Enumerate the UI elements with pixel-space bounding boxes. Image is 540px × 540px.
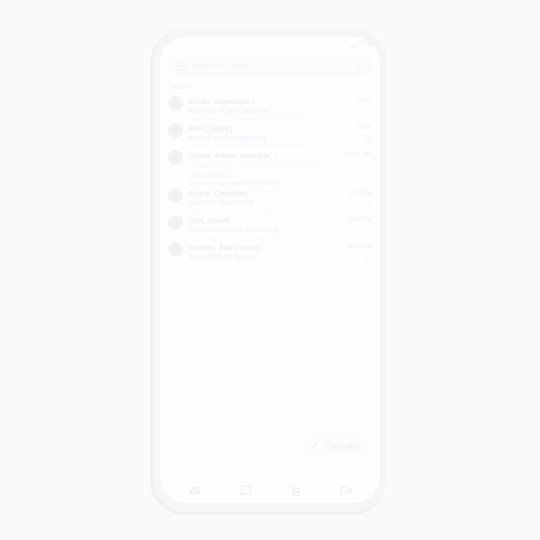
staticText: Q3 performance summary <box>189 225 278 235</box>
staticText: 9:40 AM <box>349 188 372 196</box>
button[interactable]: Open navigation menu <box>175 59 187 71</box>
staticText: Alan, Jeffery <box>189 123 234 133</box>
button[interactable]: Mail <box>177 478 211 502</box>
staticText: Ethan, Raymond <box>189 96 249 106</box>
staticText: Deck for leadership <box>189 198 255 208</box>
staticText: Now <box>358 96 372 104</box>
staticText: Presentation notes? <box>189 252 256 262</box>
staticText: Recent project updates <box>189 133 267 143</box>
staticText: INBOX <box>171 83 190 91</box>
staticText: Grace, Christian <box>189 188 248 198</box>
staticText: Helen, Adam, Amanda <box>189 150 271 160</box>
staticText: Compose <box>325 440 361 451</box>
staticText: Now <box>358 123 372 131</box>
staticText: 9:02 AM <box>349 215 372 223</box>
staticText: Expense report pending <box>189 106 270 116</box>
staticText: Lauren, Alan, Susan <box>189 242 261 252</box>
staticText: Lori, Susan <box>189 215 229 225</box>
